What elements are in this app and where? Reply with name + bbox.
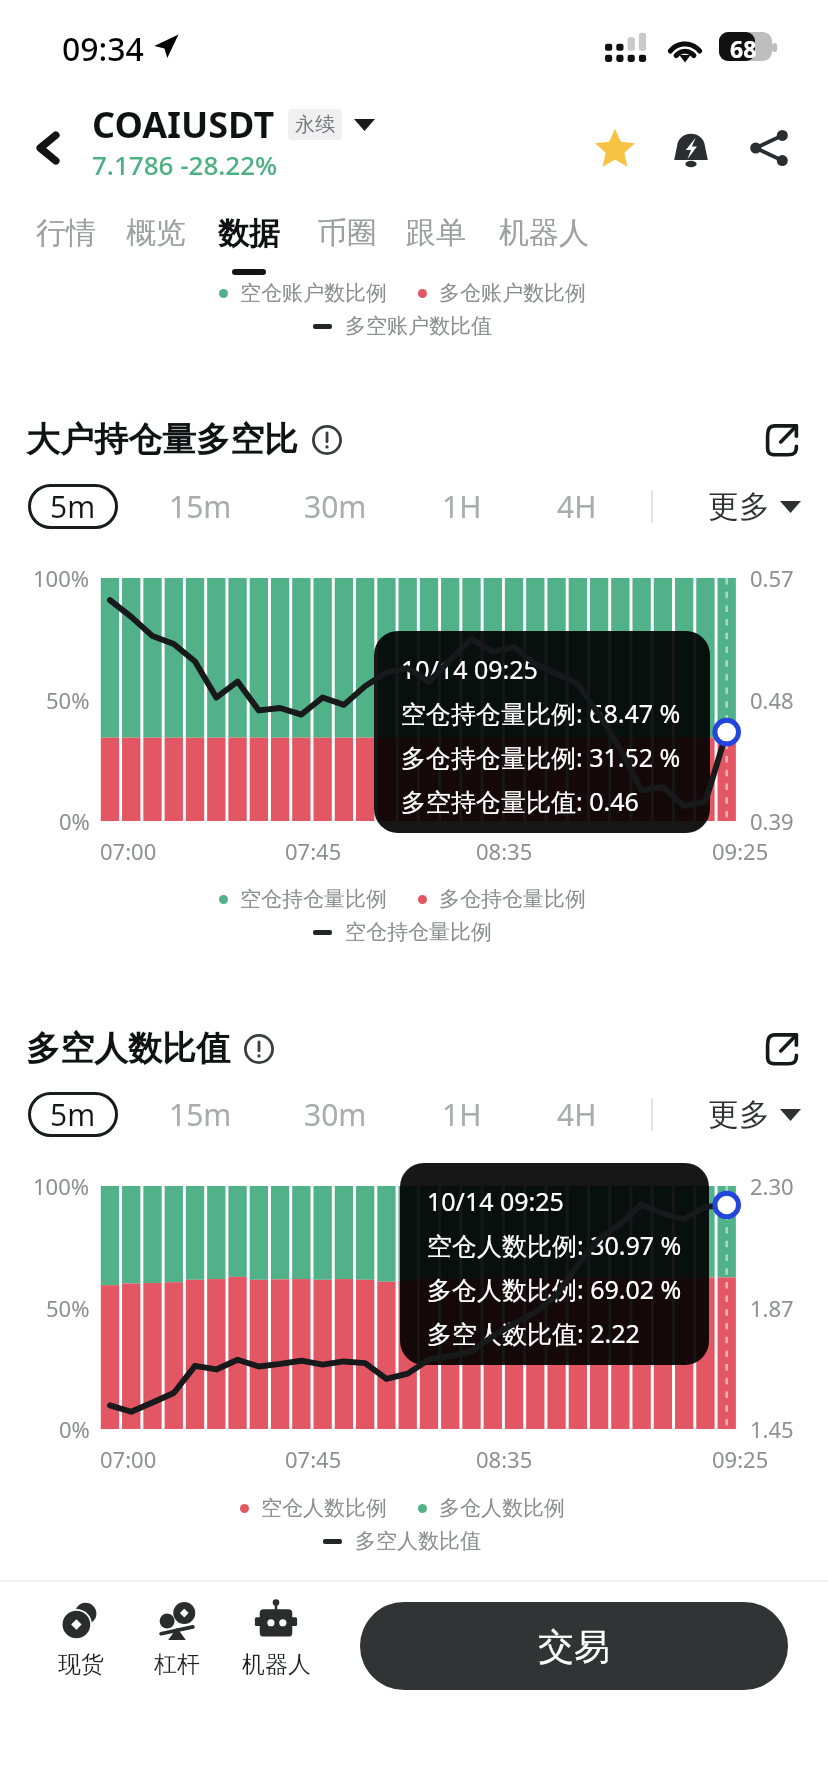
staticText: 08:35 xyxy=(476,1444,533,1474)
button[interactable]: Info xyxy=(241,1031,277,1067)
staticText: 1H xyxy=(442,486,482,527)
staticText: 50% xyxy=(46,1293,90,1323)
button[interactable]: 1H xyxy=(417,484,507,529)
staticText: 7.1786 -28.22% xyxy=(92,147,278,182)
staticText: 跟单 xyxy=(406,214,466,252)
button[interactable]: 空仓持仓量比例 xyxy=(219,886,387,912)
staticText: 空仓账户数比例 xyxy=(240,280,387,306)
button[interactable]: 30m xyxy=(290,1092,380,1137)
button[interactable]: 空仓持仓量比例 xyxy=(313,919,492,945)
staticText: 1H xyxy=(442,1094,482,1135)
staticText: 多空人数比值 xyxy=(26,1027,230,1070)
button[interactable]: Share xyxy=(740,119,798,177)
staticText: 永续 xyxy=(295,112,335,137)
staticText: 多空账户数比值 xyxy=(345,313,492,339)
staticText: 100% xyxy=(33,1171,90,1201)
staticText: 30m xyxy=(304,1094,367,1135)
button[interactable]: 5m xyxy=(28,1092,118,1137)
button[interactable]: 行情 xyxy=(23,214,109,275)
staticText: 1.87 xyxy=(750,1293,794,1323)
staticText: 空仓人数比例 xyxy=(261,1495,387,1521)
button[interactable]: 杠杆 xyxy=(122,1597,232,1679)
staticText: 2.30 xyxy=(750,1171,794,1201)
button[interactable]: 更多 xyxy=(708,484,801,529)
staticText: 币圈 xyxy=(317,214,377,252)
staticText: 50% xyxy=(46,685,90,715)
staticText: 空仓持仓量比例 xyxy=(345,919,492,945)
button[interactable]: Open full screen chart xyxy=(754,1021,810,1077)
staticText: 100% xyxy=(33,563,90,593)
staticText: 多仓人数比例: 69.02 % xyxy=(427,1272,682,1306)
staticText: 15m xyxy=(169,1094,232,1135)
button[interactable]: 更多 xyxy=(708,1092,801,1137)
button[interactable]: 数据 xyxy=(205,214,293,275)
staticText: 多仓人数比例 xyxy=(439,1495,565,1521)
button[interactable]: 交易 xyxy=(360,1602,788,1690)
staticText: 多仓持仓量比例 xyxy=(439,886,586,912)
staticText: 空仓持仓量比例 xyxy=(240,886,387,912)
button[interactable]: 15m xyxy=(155,484,245,529)
button[interactable]: 30m xyxy=(290,484,380,529)
button[interactable]: 4H xyxy=(532,1092,622,1137)
staticText: 07:00 xyxy=(100,1444,157,1474)
button[interactable]: 多仓持仓量比例 xyxy=(418,886,586,912)
staticText: 1.45 xyxy=(750,1414,794,1444)
staticText: 多空持仓量比值: 0.46 xyxy=(401,784,639,818)
staticText: 0% xyxy=(59,806,90,836)
staticText: 68 xyxy=(730,33,757,63)
staticText: 行情 xyxy=(36,214,96,252)
button[interactable]: 4H xyxy=(532,484,622,529)
button[interactable]: 空仓账户数比例 xyxy=(219,280,387,306)
button[interactable]: 机器人 xyxy=(221,1597,331,1679)
staticText: 多仓持仓量比例: 31.52 % xyxy=(401,740,681,774)
button[interactable]: 多仓账户数比例 xyxy=(418,280,586,306)
staticText: 现货 xyxy=(58,1650,104,1679)
button[interactable]: Add to favourites xyxy=(586,119,644,177)
button[interactable]: 概览 xyxy=(113,214,199,275)
button[interactable]: 空仓人数比例 xyxy=(240,1495,387,1521)
button[interactable]: Back xyxy=(20,120,76,176)
staticText: 多空人数比值: 2.22 xyxy=(427,1316,640,1350)
button[interactable]: 机器人 xyxy=(483,214,605,275)
staticText: 15m xyxy=(169,486,232,527)
staticText: 09:34 xyxy=(62,27,144,71)
button[interactable]: 多空人数比值 xyxy=(323,1528,481,1554)
button[interactable]: Info xyxy=(309,422,345,458)
staticText: 多空人数比值 xyxy=(355,1528,481,1554)
button[interactable]: 15m xyxy=(155,1092,245,1137)
staticText: 更多 xyxy=(708,487,770,526)
staticText: 0.48 xyxy=(750,685,794,715)
button[interactable]: 币圈 xyxy=(303,214,391,275)
staticText: 交易 xyxy=(538,1624,610,1669)
staticText: 0.39 xyxy=(750,806,794,836)
button[interactable]: 现货 xyxy=(26,1597,136,1679)
staticText: 5m xyxy=(50,1094,96,1135)
staticText: 4H xyxy=(557,486,597,527)
staticText: 07:45 xyxy=(285,1444,342,1474)
staticText: 30m xyxy=(304,486,367,527)
staticText: 09:25 xyxy=(712,1444,769,1474)
button[interactable]: Open full screen chart xyxy=(754,412,810,468)
button[interactable]: 跟单 xyxy=(392,214,480,275)
button[interactable]: 1H xyxy=(417,1092,507,1137)
staticText: 08:35 xyxy=(476,836,533,866)
button[interactable]: 多空账户数比值 xyxy=(313,313,492,339)
staticText: 空仓人数比例: 30.97 % xyxy=(427,1228,682,1262)
staticText: 0% xyxy=(59,1414,90,1444)
staticText: COAIUSDT xyxy=(92,100,275,149)
staticText: 空仓持仓量比例: 68.47 % xyxy=(401,696,681,730)
staticText: 07:00 xyxy=(100,836,157,866)
button[interactable]: Price alert xyxy=(662,119,720,177)
staticText: 概览 xyxy=(126,214,186,252)
staticText: 更多 xyxy=(708,1095,770,1134)
staticText: 07:45 xyxy=(285,836,342,866)
button[interactable]: 5m xyxy=(28,484,118,529)
staticText: 09:25 xyxy=(712,836,769,866)
staticText: 机器人 xyxy=(499,214,589,252)
staticText: 10/14 09:25 xyxy=(401,652,538,686)
staticText: 0.57 xyxy=(750,563,794,593)
staticText: 杠杆 xyxy=(154,1650,200,1679)
button[interactable]: 多仓人数比例 xyxy=(418,1495,565,1521)
staticText: 机器人 xyxy=(242,1650,311,1679)
staticText: 10/14 09:25 xyxy=(427,1184,564,1218)
